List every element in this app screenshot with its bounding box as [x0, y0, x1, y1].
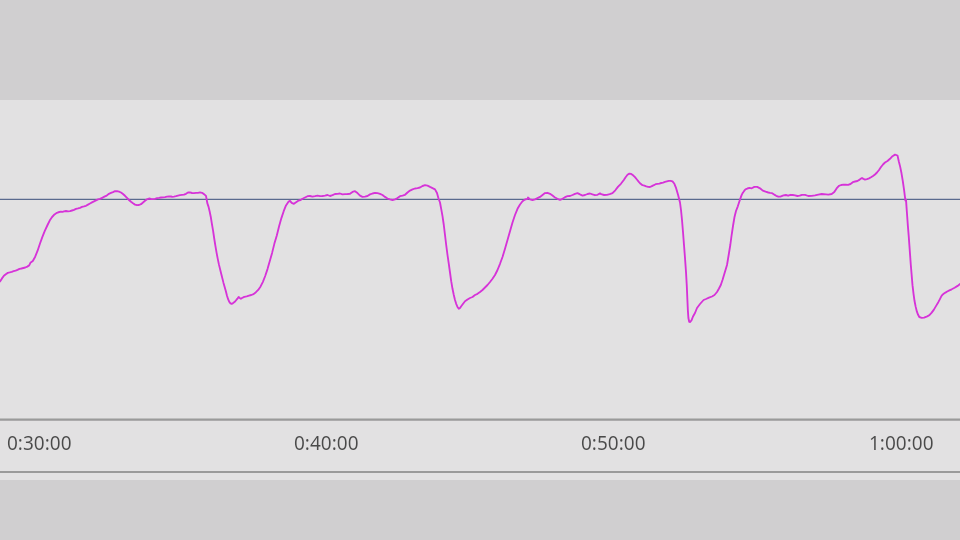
button[interactable]: 0:50:00	[581, 430, 646, 456]
staticText: 0:30:00	[7, 430, 72, 456]
button[interactable]: 0:40:00	[294, 430, 359, 456]
staticText: 0:40:00	[294, 430, 359, 456]
staticText: 1:00:00	[869, 430, 934, 456]
button[interactable]: 1:00:00	[869, 430, 934, 456]
button[interactable]: 0:30:00	[7, 430, 72, 456]
staticText: 0:50:00	[581, 430, 646, 456]
